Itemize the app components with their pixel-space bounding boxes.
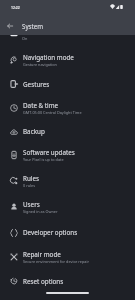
button[interactable]: Developer options (0, 220, 135, 245)
button[interactable]: Navigation mode (0, 47, 135, 72)
staticText: Your Pixel is up to date (23, 157, 64, 162)
button[interactable]: Reset options (0, 269, 135, 293)
staticText: Backup (23, 127, 45, 136)
staticText: Signed in as Owner (23, 209, 58, 214)
staticText: Secure environment for device repair (23, 259, 90, 264)
staticText: Reset options (23, 277, 64, 286)
staticText: 12:22 (11, 5, 20, 10)
staticText: Gesture navigation (23, 62, 57, 67)
button[interactable]: Users (0, 194, 135, 220)
staticText: Users (23, 200, 40, 209)
staticText: Repair mode (23, 250, 61, 259)
staticText: Date & time (23, 101, 59, 110)
staticText: Gestures (23, 80, 50, 89)
staticText: GMT-05:00 Central Daylight Time (23, 110, 82, 115)
staticText: Software updates (23, 148, 75, 157)
button[interactable]: Gestures (0, 72, 135, 96)
staticText: System (22, 22, 44, 30)
staticText: Rules (23, 174, 40, 183)
button[interactable]: Repair mode (0, 245, 135, 269)
staticText: On (22, 36, 28, 41)
staticText: Navigation mode (23, 53, 74, 62)
button[interactable]: Backup (0, 120, 135, 143)
button[interactable]: Software updates (0, 143, 135, 167)
button[interactable]: Back (3, 19, 17, 33)
staticText: 0 rules (23, 183, 36, 188)
staticText: Developer options (23, 228, 78, 237)
button[interactable]: Date & time (0, 96, 135, 120)
button[interactable]: Rules (0, 167, 135, 194)
